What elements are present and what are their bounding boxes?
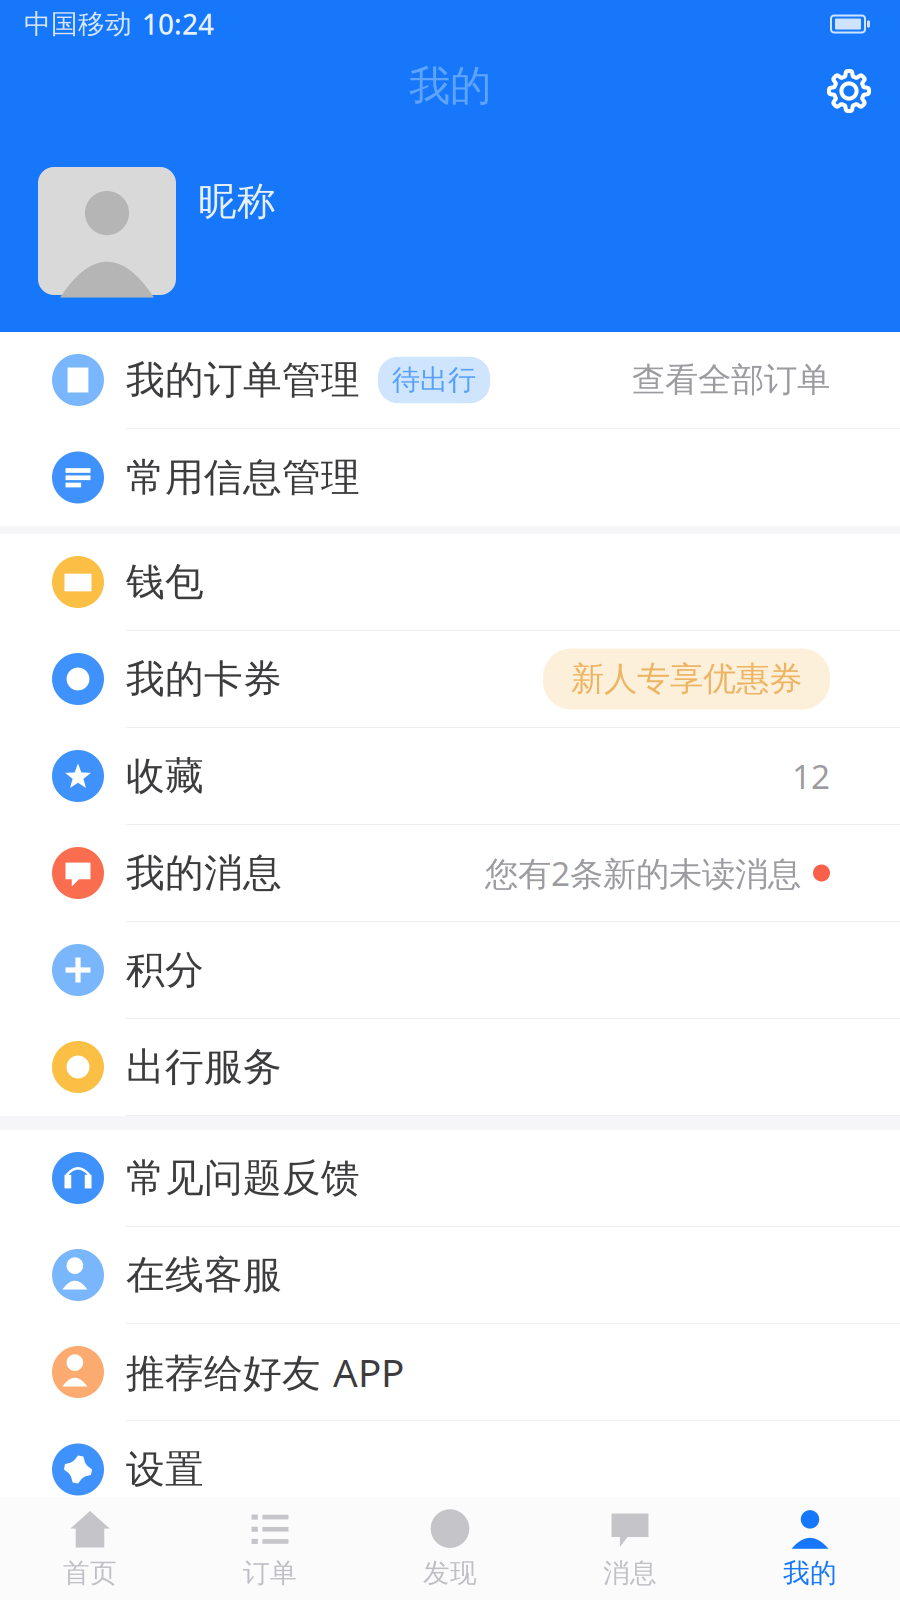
staticText: 出行服务	[126, 1043, 282, 1091]
staticText: 12	[792, 754, 830, 798]
staticText: 订单	[243, 1557, 297, 1589]
staticText: 我的订单管理	[126, 356, 360, 404]
staticText: 您有2条新的未读消息	[485, 851, 801, 895]
button[interactable]: 我的订单管理	[0, 332, 900, 429]
button[interactable]: 发现	[360, 1497, 540, 1600]
button[interactable]: 钱包	[0, 534, 900, 631]
staticText: 中国移动	[24, 8, 132, 40]
staticText: 昵称	[198, 178, 276, 225]
staticText: 待出行	[392, 363, 476, 397]
button[interactable]: 积分	[0, 922, 900, 1019]
button[interactable]: 常用信息管理	[0, 429, 900, 526]
staticText: 查看全部订单	[632, 359, 830, 400]
staticText: 常见问题反馈	[126, 1154, 360, 1202]
staticText: 新人专享优惠券	[571, 658, 802, 699]
staticText: 发现	[423, 1557, 477, 1589]
staticText: 推荐给好友 APP	[126, 1346, 404, 1398]
staticText: 收藏	[126, 752, 204, 800]
button[interactable]: 设置	[0, 1421, 900, 1518]
button[interactable]: 订单	[180, 1497, 360, 1600]
staticText: 我的	[783, 1557, 837, 1589]
staticText: 我的	[409, 61, 491, 111]
button[interactable]: 在线客服	[0, 1227, 900, 1324]
button[interactable]: 收藏	[0, 728, 900, 825]
staticText: 钱包	[126, 558, 204, 606]
staticText: 消息	[603, 1557, 657, 1589]
button[interactable]: 昵称	[198, 178, 276, 225]
button[interactable]: 出行服务	[0, 1019, 900, 1116]
button[interactable]: Settings	[812, 44, 886, 128]
button[interactable]: 消息	[540, 1497, 720, 1600]
staticText: 首页	[63, 1557, 117, 1589]
button[interactable]: 推荐给好友 APP	[0, 1324, 900, 1421]
button[interactable]: 常见问题反馈	[0, 1130, 900, 1227]
staticText: 积分	[126, 946, 204, 994]
button[interactable]: 我的卡券	[0, 631, 900, 728]
staticText: 常用信息管理	[126, 454, 360, 501]
staticText: 我的卡券	[126, 655, 282, 703]
button[interactable]: 我的消息	[0, 825, 900, 922]
button[interactable]: Profile photo	[38, 167, 176, 295]
staticText: 设置	[126, 1446, 204, 1493]
button[interactable]: 首页	[0, 1497, 180, 1600]
staticText: 我的消息	[126, 849, 282, 897]
staticText: 在线客服	[126, 1251, 282, 1299]
staticText: 10:24	[142, 5, 214, 43]
button[interactable]: 我的	[720, 1497, 900, 1600]
